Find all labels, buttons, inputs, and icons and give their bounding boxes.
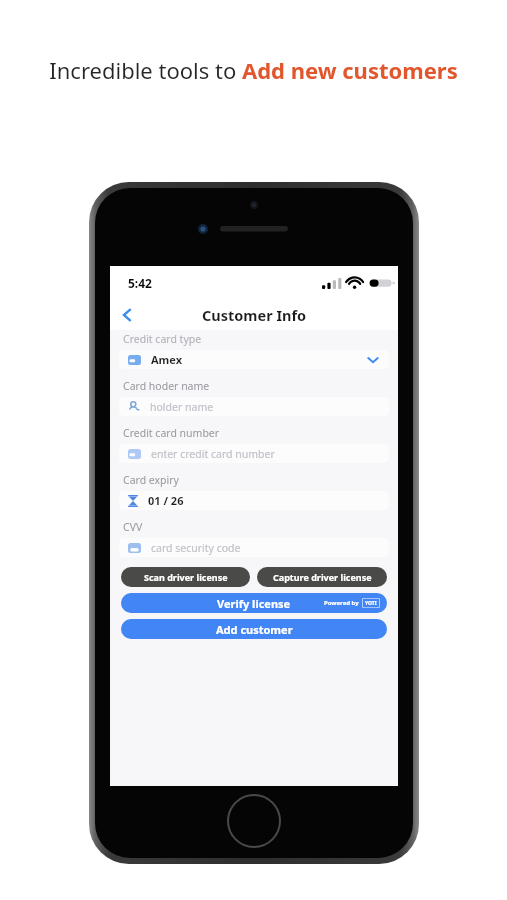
staticText: Amex <box>151 352 183 367</box>
staticText: card security code <box>151 541 241 555</box>
staticText: 01 / 26 <box>148 493 184 508</box>
button[interactable]: card security code <box>119 538 389 557</box>
staticText: Credit card number <box>123 426 220 440</box>
staticText: Card hoder name <box>123 379 210 393</box>
staticText: Credit card type <box>123 332 202 346</box>
button[interactable]: 01 / 26 <box>119 491 389 510</box>
staticText: Verify license <box>217 596 291 611</box>
staticText: Scan driver license <box>144 571 228 583</box>
button[interactable]: Amex <box>119 350 389 369</box>
staticText: holder name <box>150 400 214 414</box>
staticText: Card expiry <box>123 473 179 487</box>
staticText: Incredible tools to Add new customers <box>40 55 467 85</box>
staticText: YOTI <box>365 600 377 607</box>
button[interactable]: Back <box>110 300 144 330</box>
button[interactable]: Scan driver license <box>121 567 250 587</box>
button[interactable]: holder name <box>119 397 389 416</box>
staticText: 5:42 <box>128 275 152 291</box>
staticText: Add customer <box>216 622 293 637</box>
staticText: enter credit card number <box>151 447 275 461</box>
button[interactable]: enter credit card number <box>119 444 389 463</box>
button[interactable]: Verify license <box>121 593 387 613</box>
staticText: Powered by <box>324 599 359 607</box>
button[interactable]: Add customer <box>121 619 387 639</box>
staticText: Capture driver license <box>273 571 372 583</box>
staticText: Customer Info <box>202 305 307 325</box>
staticText: CVV <box>123 520 143 534</box>
button[interactable]: Capture driver license <box>257 567 387 587</box>
